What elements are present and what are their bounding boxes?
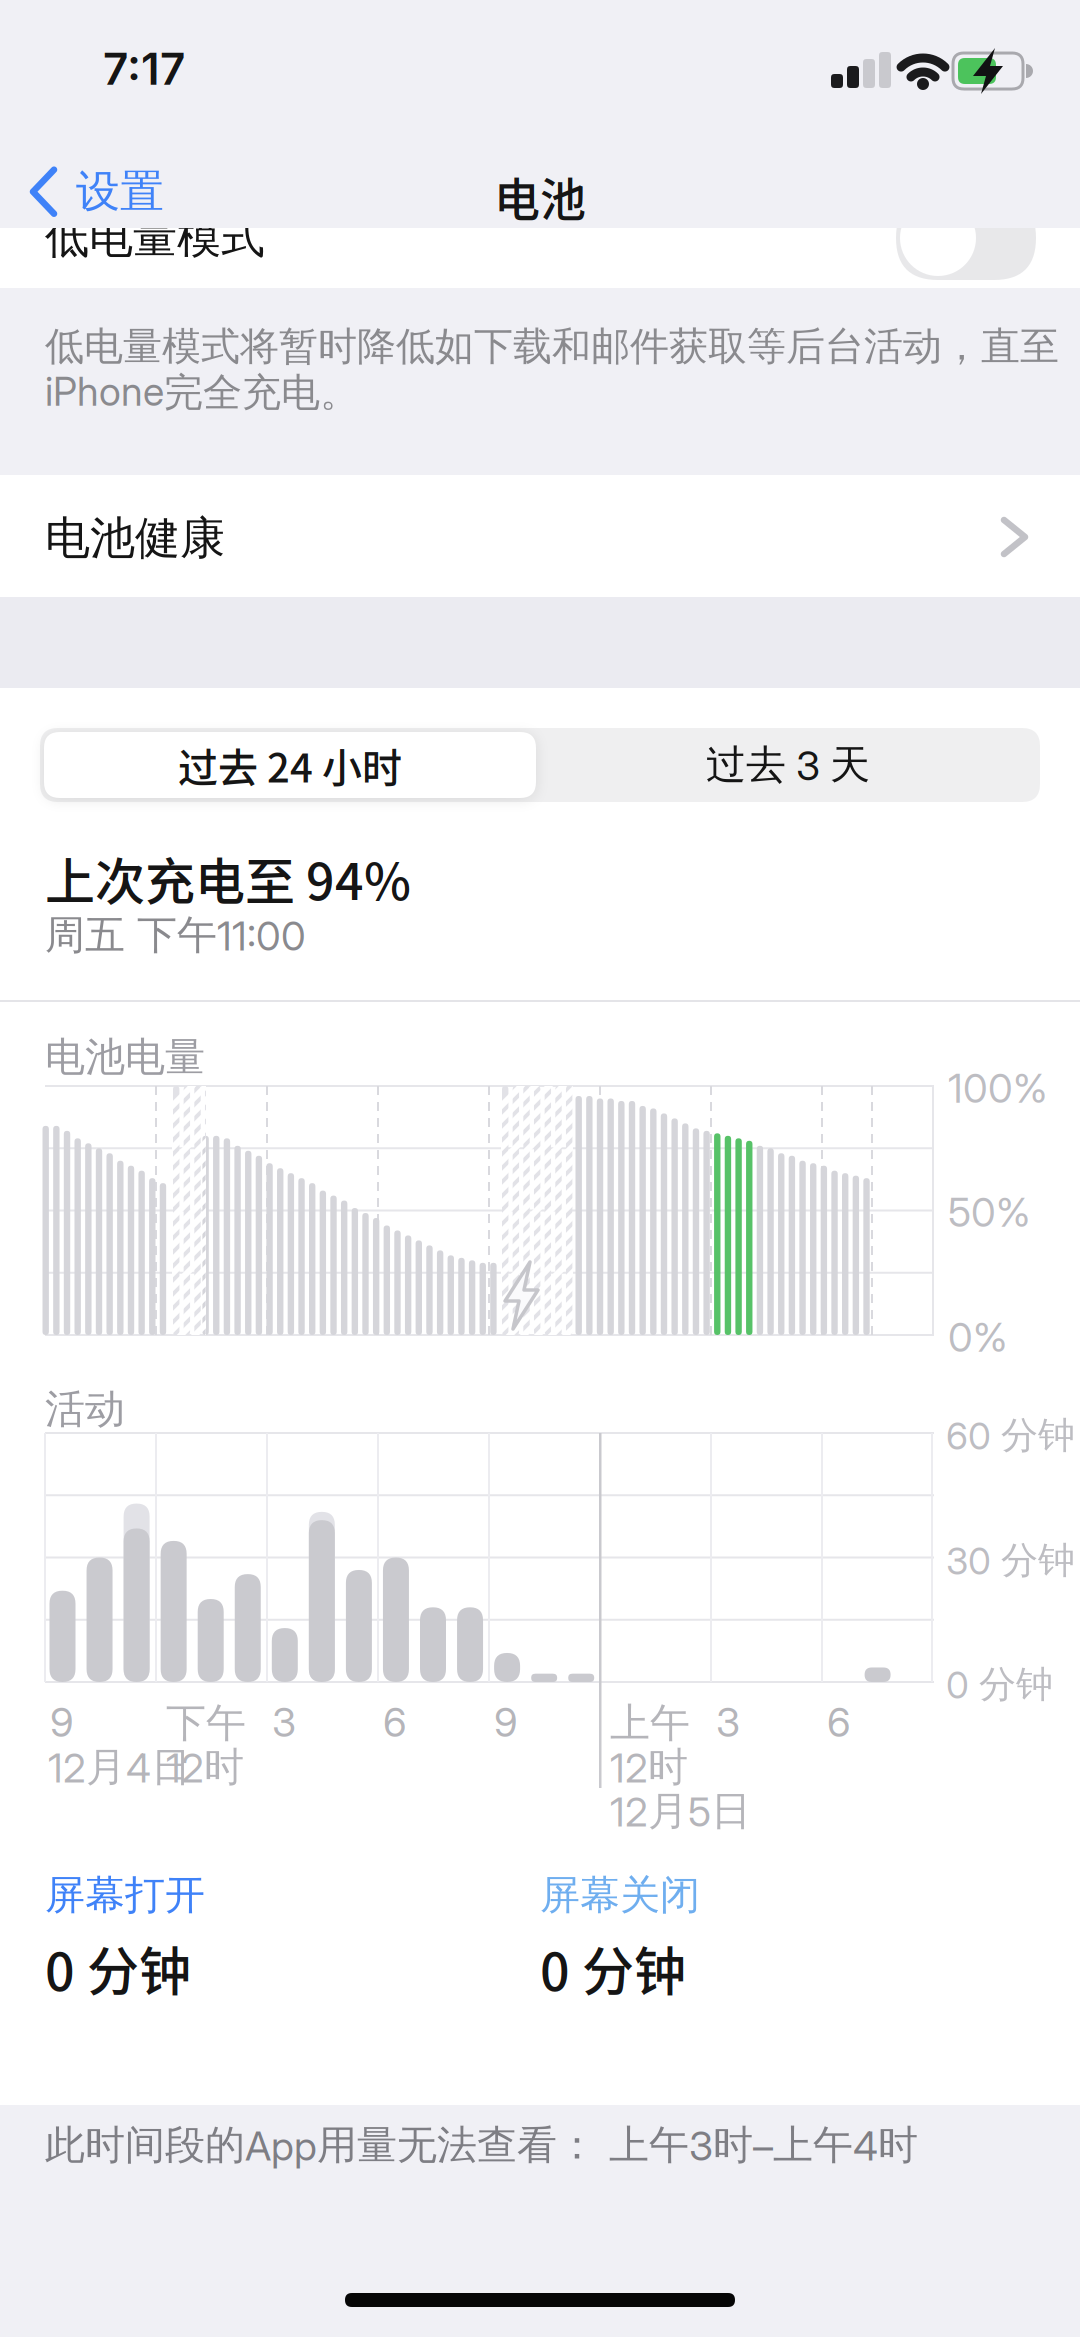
staticText: 上次充电至 94% — [45, 842, 411, 914]
staticText: 12月4日 — [48, 1742, 191, 1792]
staticText: 3 — [272, 1698, 296, 1746]
staticText: 活动 — [45, 1384, 125, 1434]
staticText: 下午 — [166, 1698, 246, 1748]
staticText: 6 — [383, 1698, 407, 1746]
staticText: 此时间段的App用量无法查看： 上午3时–上午4时 — [45, 2120, 918, 2170]
staticText: iPhone完全充电。 — [45, 368, 359, 417]
staticText: 上午 — [610, 1698, 690, 1748]
staticText: 屏幕打开 — [45, 1870, 205, 1920]
staticText: 低电量模式将暂时降低如下载和邮件获取等后台活动，直至 — [45, 322, 1059, 371]
staticText: 设置 — [76, 164, 164, 219]
staticText: 12时 — [166, 1742, 244, 1792]
staticText: 电池健康 — [45, 510, 225, 567]
button[interactable]: 过去 3 天 — [540, 732, 1036, 798]
staticText: 30 分钟 — [946, 1537, 1075, 1584]
staticText: 屏幕关闭 — [540, 1870, 700, 1920]
staticText: 100% — [948, 1064, 1047, 1112]
staticText: 3 — [716, 1698, 740, 1746]
staticText: 60 分钟 — [946, 1412, 1075, 1459]
staticText: 6 — [827, 1698, 851, 1746]
staticText: 0% — [948, 1313, 1007, 1361]
staticText: 过去 3 天 — [706, 740, 870, 790]
staticText: 0 分钟 — [45, 1930, 191, 2006]
staticText: 0 分钟 — [946, 1661, 1053, 1708]
staticText: 电池 — [494, 163, 586, 230]
button[interactable]: 过去 24 小时 — [44, 732, 536, 798]
button[interactable]: 低电量模式 — [896, 196, 1036, 280]
staticText: 12月5日 — [610, 1786, 751, 1836]
staticText: 50% — [948, 1188, 1030, 1236]
button[interactable]: 屏幕关闭 — [540, 1870, 700, 2006]
staticText: 电池电量 — [45, 1032, 205, 1082]
staticText: 9 — [494, 1698, 518, 1746]
staticText: 9 — [50, 1698, 74, 1746]
button[interactable]: 屏幕打开 — [45, 1870, 205, 2006]
staticText: 周五 下午11:00 — [45, 910, 306, 960]
staticText: 12时 — [610, 1742, 688, 1792]
button[interactable]: 电池健康 — [0, 475, 1080, 597]
staticText: 0 分钟 — [540, 1930, 686, 2006]
button[interactable]: 设置 — [28, 164, 164, 219]
staticText: 低电量模式 — [45, 210, 265, 265]
staticText: 过去 24 小时 — [178, 736, 402, 794]
staticText: 7:17 — [103, 42, 185, 95]
